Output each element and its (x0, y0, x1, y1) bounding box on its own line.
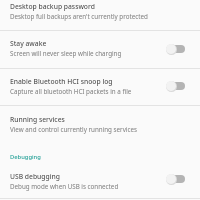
staticText: Debugging (10, 153, 41, 161)
staticText: Capture all bluetooth HCI packets in a f… (10, 87, 132, 96)
staticText: Screen will never sleep while charging (10, 49, 122, 58)
button[interactable]: USB debugging (0, 161, 200, 199)
button[interactable]: Debugging (0, 153, 200, 165)
button[interactable]: Toggle (166, 172, 186, 186)
button[interactable]: Stay awake (0, 30, 200, 69)
staticText: Running services (10, 115, 65, 124)
staticText: Debug mode when USB is connected (10, 182, 119, 191)
staticText: Desktop full backups aren't currently pr… (10, 12, 148, 21)
staticText: Desktop backup password (10, 2, 95, 11)
button[interactable]: Enable Bluetooth HCI snoop log (0, 68, 200, 106)
staticText: Stay awake (10, 39, 47, 48)
button[interactable]: Toggle (166, 42, 186, 56)
button[interactable]: Running services (0, 105, 200, 143)
staticText: Enable Bluetooth HCI snoop log (10, 77, 113, 86)
staticText: View and control currently running servi… (10, 125, 137, 134)
staticText: USB debugging (10, 172, 60, 181)
button[interactable]: Desktop backup password (0, 0, 200, 31)
button[interactable]: Toggle (166, 79, 186, 93)
